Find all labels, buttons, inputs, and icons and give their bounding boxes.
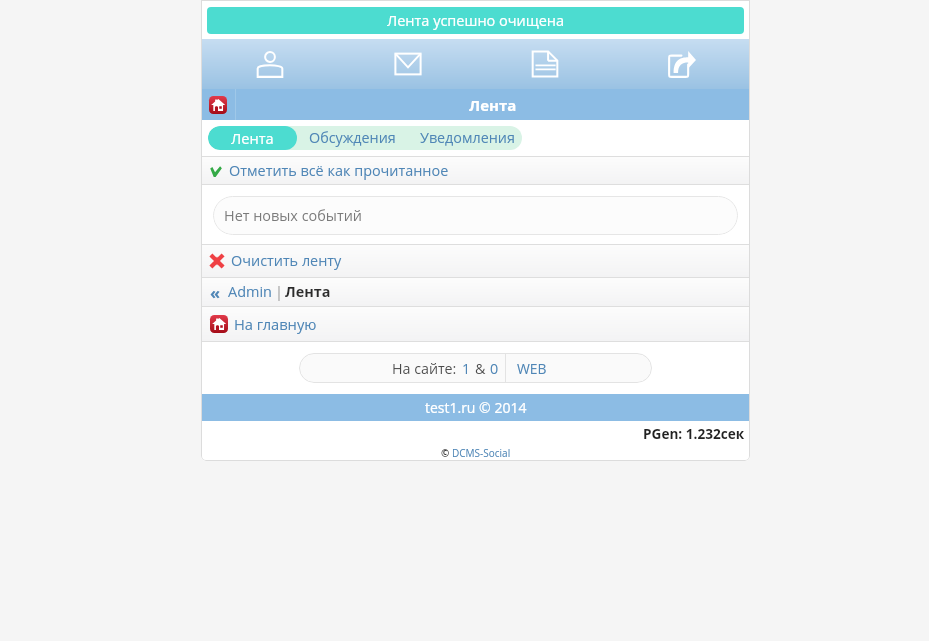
- button[interactable]: Лента: [208, 126, 297, 150]
- staticText: WEB: [517, 359, 547, 378]
- staticText: ©: [441, 446, 452, 460]
- staticText: Лента: [285, 282, 331, 302]
- staticText: Уведомления: [420, 128, 515, 148]
- staticText: Отметить всё как прочитанное: [229, 161, 449, 181]
- button[interactable]: Messages: [339, 39, 476, 89]
- button[interactable]: Admin: [228, 282, 272, 302]
- button[interactable]: Share: [613, 39, 750, 89]
- button[interactable]: WEB: [506, 353, 652, 383]
- button[interactable]: Pages: [476, 39, 613, 89]
- staticText: 1: [462, 359, 471, 378]
- button[interactable]: Profile: [201, 39, 339, 89]
- staticText: Обсуждения: [309, 128, 396, 148]
- staticText: DCMS-Social: [452, 446, 511, 460]
- button[interactable]: Очистить ленту: [201, 245, 750, 277]
- button[interactable]: Обсуждения: [297, 126, 408, 150]
- staticText: Очистить ленту: [231, 251, 342, 271]
- staticText: PGen: 1.232сек: [643, 424, 745, 443]
- staticText: На главную: [234, 314, 317, 334]
- staticText: «: [210, 281, 221, 303]
- staticText: Лента: [231, 128, 274, 148]
- staticText: Лента: [469, 95, 517, 115]
- staticText: test1.ru © 2014: [425, 398, 527, 417]
- button[interactable]: Отметить всё как прочитанное: [201, 157, 750, 184]
- staticText: &: [475, 359, 486, 378]
- staticText: Нет новых событий: [224, 206, 362, 226]
- button[interactable]: Уведомления: [408, 126, 522, 150]
- button[interactable]: На главную: [201, 307, 750, 341]
- button[interactable]: Home: [201, 89, 235, 120]
- staticText: Admin: [228, 282, 272, 302]
- staticText: На сайте:: [392, 359, 457, 378]
- staticText: Лента успешно очищена: [387, 11, 565, 31]
- staticText: 0: [490, 359, 499, 378]
- staticText: |: [275, 282, 283, 302]
